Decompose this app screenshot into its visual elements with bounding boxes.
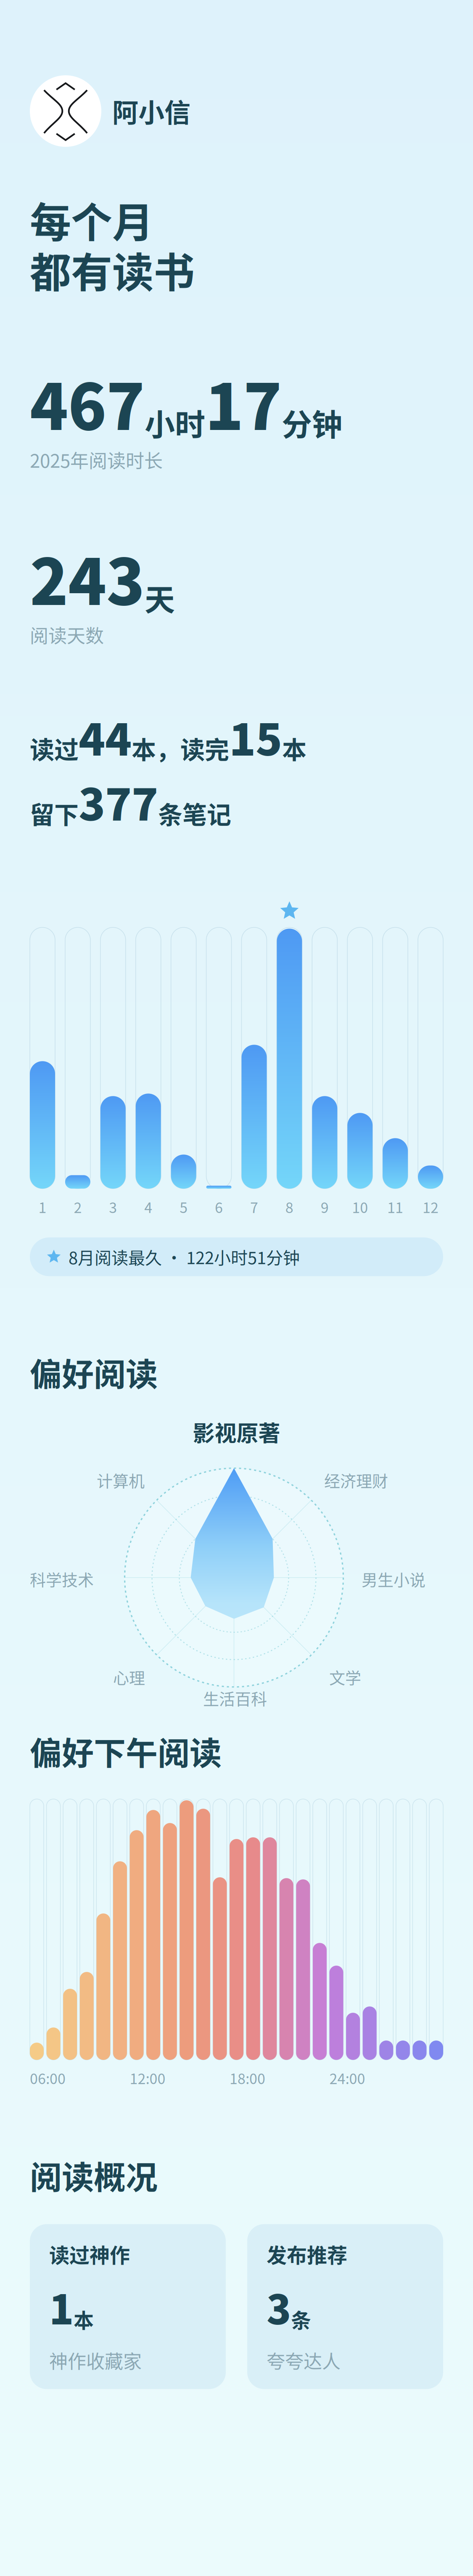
staticText: 6 [215,1198,223,1215]
staticText: 经济理财 [324,1470,388,1490]
staticText: 男生小说 [362,1569,425,1589]
staticText: 1 [49,2282,74,2331]
staticText: 12:00 [130,2069,165,2087]
staticText: 10 [352,1198,368,1215]
staticText: 心理 [113,1667,145,1687]
staticText: 计算机 [97,1470,145,1490]
staticText: 9 [321,1198,329,1215]
button[interactable]: 读过神作 [30,2224,226,2389]
staticText: 2 [74,1198,82,1215]
staticText: 5 [180,1198,188,1215]
staticText: 3 [109,1198,117,1215]
staticText: 4 [144,1198,152,1215]
staticText: 8月阅读最久 · 122小时51分钟 [69,1247,300,1267]
staticText: 偏好阅读 [30,1353,158,1392]
button[interactable]: 发布推荐 [247,2224,443,2389]
staticText: 条笔记 [158,798,231,828]
staticText: 12 [423,1198,439,1215]
staticText: 15 [229,710,282,763]
staticText: 分钟 [282,404,342,441]
staticText: 3 [267,2282,291,2331]
staticText: 阅读概况 [30,2156,158,2195]
staticText: 17 [205,364,282,441]
staticText: 467 [30,364,145,441]
staticText: 偏好下午阅读 [30,1732,222,1770]
button[interactable]: 8月阅读最久 · 122小时51分钟 [30,1237,443,1276]
staticText: 18:00 [230,2069,265,2087]
staticText: 44 [79,710,132,763]
staticText: 8 [285,1198,293,1215]
staticText: 2025年阅读时长 [30,448,163,471]
staticText: 文学 [329,1667,361,1687]
staticText: 天 [145,579,175,616]
staticText: 条 [291,2307,311,2331]
staticText: 神作收藏家 [49,2349,142,2372]
staticText: 1 [38,1198,46,1215]
staticText: 阿小信 [112,95,190,127]
staticText: 留下 [30,798,79,828]
staticText: 影视原著 [193,1419,280,1445]
staticText: 夸夸达人 [267,2349,341,2372]
staticText: 阅读天数 [30,623,104,646]
staticText: 发布推荐 [267,2242,347,2266]
staticText: 7 [250,1198,258,1215]
staticText: 读过 [30,733,79,763]
staticText: 243 [30,539,145,616]
staticText: 本 [282,733,307,763]
staticText: 本 [74,2307,94,2331]
staticText: 生活百科 [203,1688,267,1708]
staticText: 24:00 [329,2069,365,2087]
staticText: 小时 [145,404,205,441]
staticText: 科学技术 [30,1569,94,1589]
staticText: 读过神作 [49,2242,130,2266]
staticText: 本，读完 [132,733,229,763]
staticText: 377 [79,775,158,828]
staticText: 11 [387,1198,403,1215]
staticText: 都有读书 [30,245,195,295]
staticText: 06:00 [30,2069,66,2087]
staticText: 每个月 [30,194,153,245]
